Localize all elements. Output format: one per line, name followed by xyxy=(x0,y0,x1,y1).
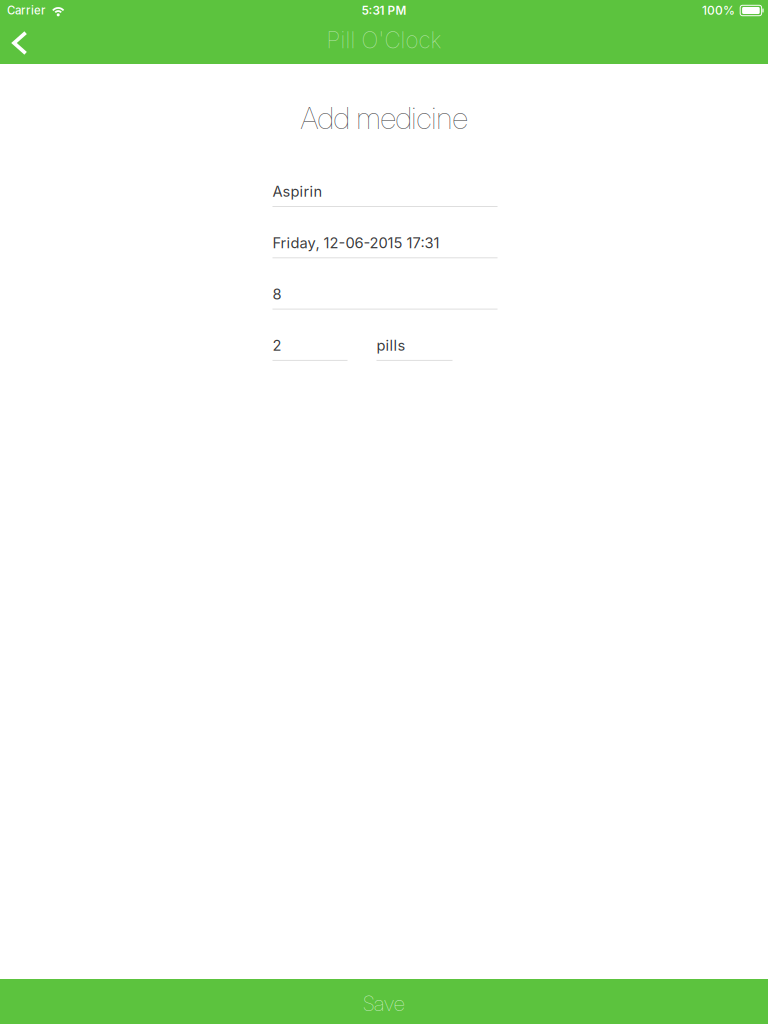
button[interactable]: pills xyxy=(376,338,452,361)
staticText: 100% xyxy=(702,3,735,18)
staticText: Pill O'Clock xyxy=(326,26,441,54)
button[interactable]: Back xyxy=(0,20,48,64)
staticText: 5:31 PM xyxy=(361,3,406,18)
staticText: 2 xyxy=(272,336,281,354)
button[interactable]: Aspirin xyxy=(272,184,497,207)
button[interactable]: Friday, 12-06-2015 17:31 xyxy=(272,235,497,258)
button[interactable]: Save xyxy=(0,979,768,1024)
staticText: Add medicine xyxy=(300,100,467,136)
staticText: pills xyxy=(376,336,405,354)
button[interactable]: 8 xyxy=(272,287,497,310)
staticText: Aspirin xyxy=(272,183,322,200)
staticText: Save xyxy=(363,991,405,1016)
button[interactable]: 2 xyxy=(272,338,347,361)
staticText: 8 xyxy=(272,285,281,303)
staticText: Carrier xyxy=(7,4,45,17)
staticText: Friday, 12-06-2015 17:31 xyxy=(272,234,439,252)
